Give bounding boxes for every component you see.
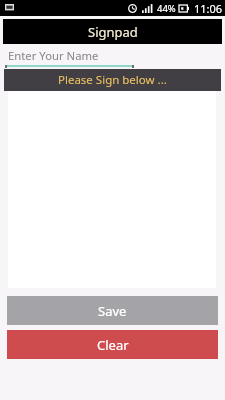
staticText: Clear bbox=[97, 336, 129, 354]
staticText: Enter Your Name bbox=[8, 48, 99, 63]
staticText: Signpad bbox=[88, 23, 138, 41]
button[interactable]: Signpad bbox=[3, 19, 222, 44]
button[interactable]: Clear bbox=[7, 330, 218, 359]
staticText: 11:06 bbox=[194, 1, 223, 16]
button[interactable]: Enter Your Name bbox=[5, 44, 220, 68]
staticText: 44% bbox=[157, 2, 176, 15]
staticText: Save bbox=[98, 302, 127, 320]
staticText: Please Sign below ... bbox=[58, 72, 167, 88]
button[interactable]: Save bbox=[7, 296, 218, 325]
